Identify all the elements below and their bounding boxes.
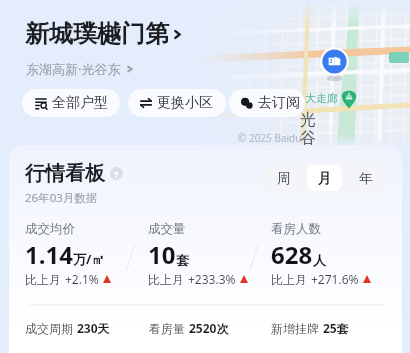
staticText: 230天 <box>77 320 110 336</box>
staticText: 更换小区 <box>157 94 213 112</box>
button[interactable]: 东湖高新·光谷东 <box>26 60 135 78</box>
staticText: 行情看板 <box>25 161 105 186</box>
button[interactable]: 看房量 <box>149 320 229 336</box>
staticText: 月 <box>318 170 332 187</box>
staticText: 25套 <box>323 320 349 336</box>
button[interactable]: 年 <box>348 165 383 191</box>
staticText: 看房量 <box>149 320 189 336</box>
staticText: 去订阅 <box>258 94 300 112</box>
button[interactable]: 周 <box>266 165 301 191</box>
staticText: 比上月 <box>148 271 188 287</box>
staticText: 成交均价 <box>25 221 75 237</box>
staticText: 628 <box>271 238 313 271</box>
button[interactable]: 行情看板 <box>25 161 123 186</box>
staticText: ? <box>114 168 119 180</box>
button[interactable]: 成交周期 <box>25 320 110 336</box>
button[interactable]: 成交均价 <box>25 221 148 287</box>
staticText: 看房人数 <box>271 221 321 237</box>
staticText: 成交周期 <box>25 320 77 336</box>
staticText: 新城璞樾门第 <box>25 19 169 49</box>
staticText: +271.6% <box>311 271 359 287</box>
staticText: 周 <box>277 170 291 187</box>
button[interactable]: 去订阅 <box>229 89 305 117</box>
staticText: 新增挂牌 <box>271 320 323 336</box>
staticText: 2520次 <box>189 320 229 336</box>
staticText: 全部户型 <box>52 94 108 112</box>
button[interactable]: 更换小区 <box>128 89 226 117</box>
staticText: 年 <box>359 170 373 187</box>
staticText: 1.14 <box>25 238 73 271</box>
staticText: 套 <box>176 252 189 268</box>
staticText: © 2025 Baidu <box>238 131 302 145</box>
staticText: 人 <box>313 252 326 268</box>
staticText: 10 <box>148 238 176 271</box>
staticText: 大走廊 <box>305 91 338 105</box>
staticText: 26年03月数据 <box>25 190 98 206</box>
staticText: +233.3% <box>188 271 236 287</box>
staticText: 成交量 <box>148 221 186 237</box>
button[interactable]: 看房人数 <box>271 221 394 287</box>
button[interactable]: 新增挂牌 <box>271 320 349 336</box>
staticText: +2.1% <box>65 271 99 287</box>
staticText: 比上月 <box>271 271 311 287</box>
staticText: 光 谷 <box>300 110 316 147</box>
staticText: 比上月 <box>25 271 65 287</box>
button[interactable]: 全部户型 <box>22 89 120 117</box>
button[interactable]: 成交量 <box>148 221 271 287</box>
staticText: 东湖高新·光谷东 <box>26 60 121 78</box>
button[interactable]: 小区位置 <box>319 46 350 84</box>
staticText: 万/㎡ <box>73 250 105 268</box>
button[interactable]: 月 <box>307 165 342 191</box>
button[interactable]: 新城璞樾门第 <box>25 19 184 49</box>
